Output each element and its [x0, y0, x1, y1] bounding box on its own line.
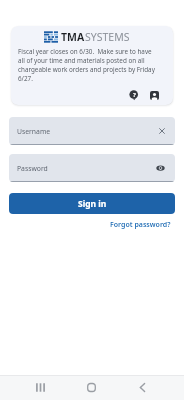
- staticText: ?: [133, 91, 136, 99]
- staticText: Fiscal year closes on 6/30. Make sure to…: [18, 47, 155, 83]
- button[interactable]: [117, 375, 168, 400]
- button[interactable]: Forgot password?: [110, 220, 171, 230]
- staticText: Sign in: [78, 198, 107, 210]
- staticText: SYSTEMS: [85, 30, 130, 44]
- staticText: Password: [17, 164, 48, 173]
- button[interactable]: Username: [9, 117, 175, 145]
- staticText: TMA: [61, 30, 85, 44]
- button[interactable]: [66, 375, 117, 400]
- button[interactable]: Sign in: [9, 193, 175, 214]
- button[interactable]: Password: [9, 154, 175, 182]
- button[interactable]: [150, 91, 159, 100]
- staticText: Username: [17, 127, 51, 136]
- button[interactable]: ?: [129, 90, 139, 100]
- staticText: Forgot password?: [110, 220, 171, 230]
- button[interactable]: [16, 375, 66, 400]
